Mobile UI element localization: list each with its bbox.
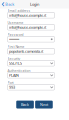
staticText: First Name	[7, 45, 24, 49]
staticText: info@house-example.it	[9, 13, 46, 18]
staticText: info@house-example.it	[9, 25, 46, 30]
staticText: SSL/TLS	[9, 61, 22, 66]
staticText: ••••••••••	[9, 37, 19, 42]
staticText: Next	[40, 102, 48, 107]
staticText: Security	[7, 57, 20, 61]
staticText: PLAIN	[9, 73, 19, 78]
staticText: popolanti.camerata.it	[9, 49, 43, 54]
staticText: 993	[9, 85, 15, 90]
button[interactable]: Next	[35, 101, 53, 108]
staticText: Username	[7, 21, 23, 25]
staticText: Email address	[7, 9, 30, 13]
staticText: Login	[30, 2, 39, 7]
button[interactable]: Back	[16, 101, 34, 108]
staticText: Back	[21, 102, 29, 107]
staticText: Authentication	[7, 69, 30, 73]
staticText: Password	[7, 33, 23, 37]
staticText: Back	[5, 2, 14, 7]
staticText: Port	[7, 81, 13, 85]
button[interactable]: Back	[0, 0, 16, 8]
